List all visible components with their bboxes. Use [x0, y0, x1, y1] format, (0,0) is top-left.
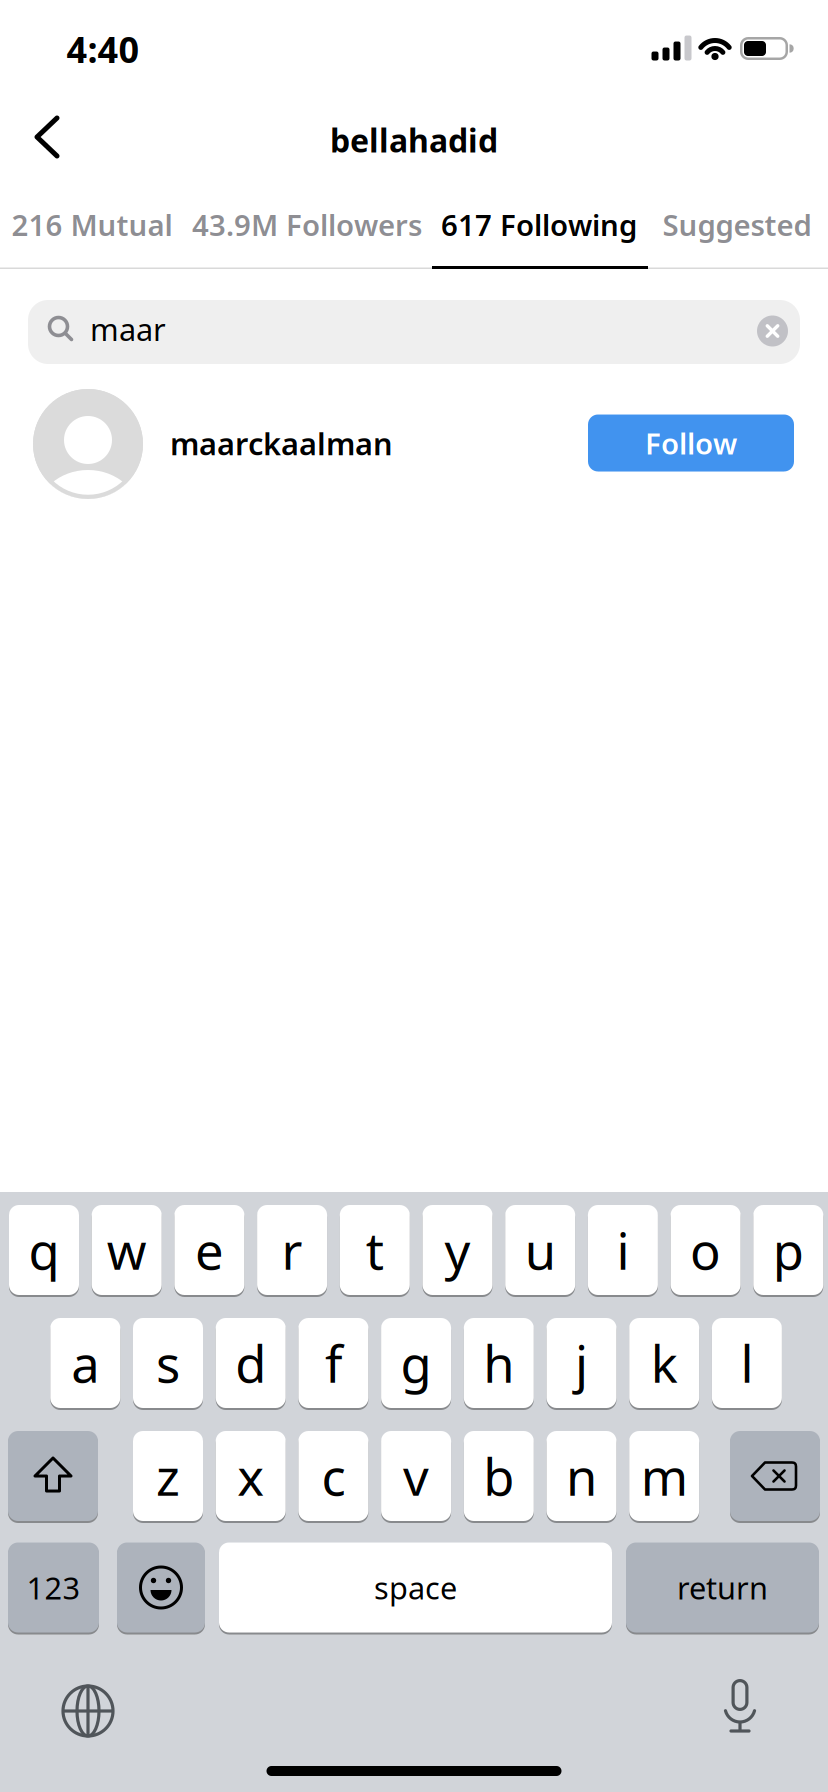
button[interactable]: h: [464, 1317, 534, 1409]
staticText: l: [740, 1329, 753, 1397]
staticText: r: [282, 1216, 303, 1284]
staticText: maar: [90, 309, 166, 349]
button[interactable]: [24, 112, 76, 162]
staticText: g: [401, 1329, 432, 1397]
staticText: s: [156, 1329, 180, 1397]
button[interactable]: s: [133, 1317, 203, 1409]
staticText: v: [403, 1442, 429, 1510]
button[interactable]: b: [464, 1430, 534, 1522]
button[interactable]: u: [505, 1204, 575, 1296]
staticText: d: [235, 1329, 266, 1397]
button[interactable]: x: [216, 1430, 286, 1522]
button[interactable]: j: [546, 1317, 616, 1409]
staticText: 4:40: [66, 25, 139, 73]
staticText: f: [325, 1329, 342, 1397]
staticText: c: [321, 1442, 345, 1510]
staticText: bellahadid: [330, 119, 498, 161]
button[interactable]: y: [422, 1204, 492, 1296]
button[interactable]: return: [626, 1541, 819, 1633]
staticText: w: [107, 1216, 147, 1284]
staticText: o: [690, 1216, 721, 1284]
button[interactable]: maarckaalman: [0, 389, 560, 499]
button[interactable]: f: [298, 1317, 368, 1409]
staticText: j: [575, 1329, 588, 1397]
staticText: Follow: [645, 423, 737, 462]
button[interactable]: Suggested: [627, 192, 828, 256]
staticText: 43.9M Followers: [192, 205, 422, 244]
button[interactable]: 43.9M Followers: [167, 192, 447, 256]
staticText: b: [483, 1442, 514, 1510]
staticText: y: [444, 1216, 470, 1284]
staticText: h: [483, 1329, 514, 1397]
button[interactable]: space: [219, 1541, 612, 1633]
button[interactable]: d: [216, 1317, 286, 1409]
button[interactable]: o: [671, 1204, 741, 1296]
button[interactable]: e: [174, 1204, 244, 1296]
staticText: q: [28, 1216, 59, 1284]
button[interactable]: [730, 1430, 820, 1522]
staticText: Suggested: [662, 205, 811, 244]
staticText: 123: [26, 1567, 80, 1608]
staticText: x: [237, 1442, 264, 1510]
staticText: return: [677, 1567, 768, 1608]
button[interactable]: [722, 1679, 758, 1739]
staticText: p: [773, 1216, 804, 1284]
button[interactable]: i: [588, 1204, 658, 1296]
button[interactable]: n: [546, 1430, 616, 1522]
button[interactable]: z: [133, 1430, 203, 1522]
button[interactable]: a: [50, 1317, 120, 1409]
staticText: space: [374, 1567, 457, 1608]
button[interactable]: c: [298, 1430, 368, 1522]
button[interactable]: p: [753, 1204, 823, 1296]
staticText: m: [641, 1442, 688, 1510]
button[interactable]: [60, 1683, 116, 1739]
staticText: i: [616, 1216, 629, 1284]
staticText: a: [71, 1329, 99, 1397]
button[interactable]: [756, 315, 788, 347]
button[interactable]: [117, 1541, 205, 1633]
button[interactable]: t: [340, 1204, 410, 1296]
button[interactable]: k: [629, 1317, 699, 1409]
button[interactable]: w: [92, 1204, 162, 1296]
staticText: e: [195, 1216, 224, 1284]
staticText: z: [156, 1442, 180, 1510]
staticText: 216 Mutual: [11, 205, 172, 244]
button[interactable]: r: [257, 1204, 327, 1296]
staticText: u: [525, 1216, 556, 1284]
button[interactable]: Follow: [588, 414, 794, 471]
button[interactable]: 216 Mutual: [0, 192, 217, 256]
button[interactable]: [8, 1430, 98, 1522]
button[interactable]: [28, 300, 800, 364]
button[interactable]: g: [381, 1317, 451, 1409]
staticText: n: [566, 1442, 597, 1510]
button[interactable]: l: [712, 1317, 782, 1409]
staticText: t: [366, 1216, 384, 1284]
button[interactable]: 123: [8, 1541, 99, 1633]
staticText: k: [651, 1329, 678, 1397]
staticText: 617 Following: [441, 205, 637, 244]
button[interactable]: q: [9, 1204, 79, 1296]
button[interactable]: m: [629, 1430, 699, 1522]
button[interactable]: 617 Following: [419, 192, 659, 256]
button[interactable]: v: [381, 1430, 451, 1522]
staticText: maarckaalman: [170, 423, 393, 464]
